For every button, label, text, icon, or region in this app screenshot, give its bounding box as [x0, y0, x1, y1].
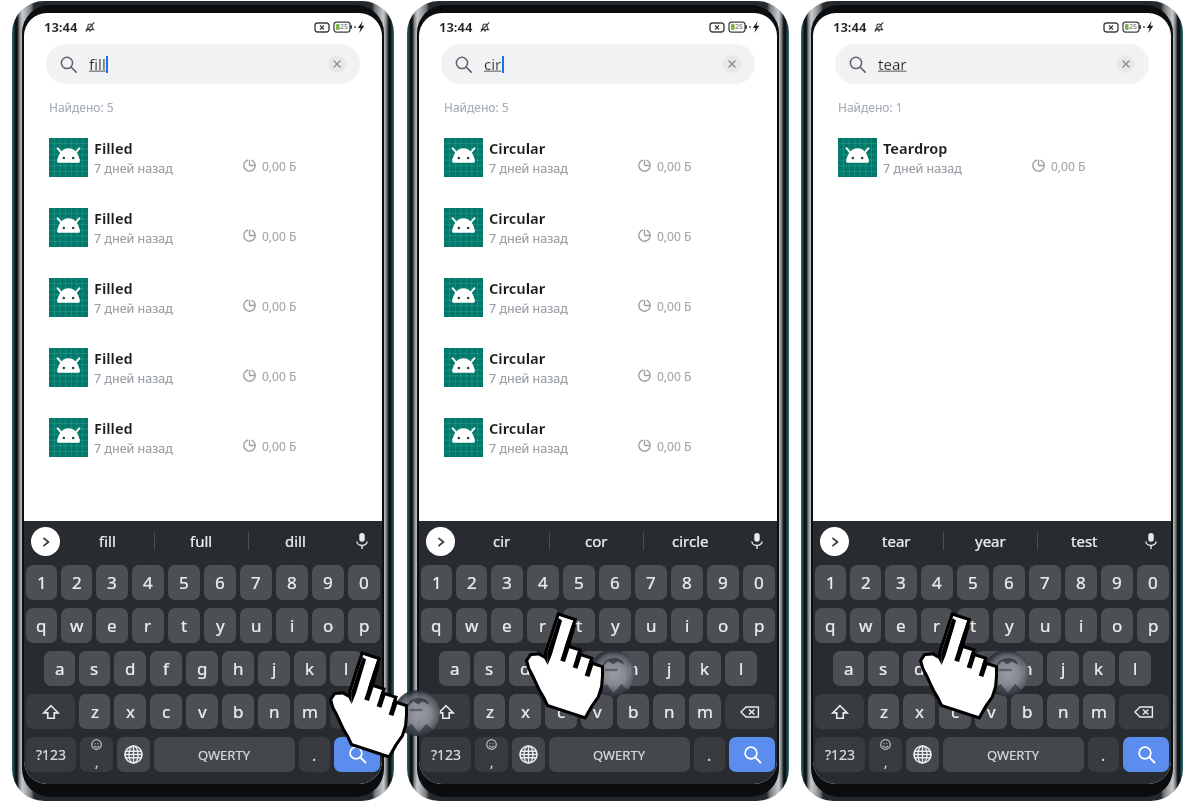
button[interactable]: f: [939, 651, 971, 686]
button[interactable]: 4: [527, 565, 559, 600]
button[interactable]: More suggestions: [820, 527, 849, 556]
button[interactable]: m: [689, 694, 721, 729]
button[interactable]: Shift: [815, 694, 864, 729]
button[interactable]: g: [186, 651, 218, 686]
button[interactable]: 2: [850, 565, 881, 600]
button[interactable]: cir: [441, 44, 755, 84]
button[interactable]: Change language: [906, 737, 939, 772]
button[interactable]: 5: [563, 565, 595, 600]
button[interactable]: s: [474, 651, 505, 686]
button[interactable]: 0: [1137, 565, 1169, 600]
button[interactable]: j: [1047, 651, 1079, 686]
button[interactable]: x: [509, 694, 541, 729]
button[interactable]: 7: [635, 565, 667, 600]
button[interactable]: Voice input: [1131, 521, 1171, 561]
button[interactable]: More suggestions: [426, 527, 455, 556]
button[interactable]: t: [563, 608, 595, 643]
button[interactable]: i: [276, 608, 308, 643]
button[interactable]: r: [921, 608, 953, 643]
button[interactable]: 9: [312, 565, 344, 600]
button[interactable]: f: [150, 651, 182, 686]
button[interactable]: QWERTY: [154, 737, 295, 772]
button[interactable]: l: [1119, 651, 1151, 686]
button[interactable]: 3: [885, 565, 917, 600]
button[interactable]: j: [258, 651, 290, 686]
button[interactable]: h: [222, 651, 254, 686]
button[interactable]: Emoji and comma: [475, 737, 508, 772]
button[interactable]: x: [903, 694, 935, 729]
button[interactable]: 8: [671, 565, 703, 600]
button[interactable]: cir: [455, 521, 549, 561]
button[interactable]: 6: [599, 565, 631, 600]
button[interactable]: i: [1065, 608, 1097, 643]
button[interactable]: z: [868, 694, 899, 729]
button[interactable]: Circular: [419, 332, 777, 402]
button[interactable]: h: [617, 651, 649, 686]
button[interactable]: a: [439, 651, 470, 686]
button[interactable]: 3: [491, 565, 523, 600]
button[interactable]: a: [44, 651, 75, 686]
button[interactable]: s: [79, 651, 110, 686]
button[interactable]: Clear search: [328, 55, 346, 73]
button[interactable]: r: [132, 608, 164, 643]
button[interactable]: 2: [456, 565, 487, 600]
button[interactable]: Circular: [419, 402, 777, 472]
button[interactable]: h: [1011, 651, 1043, 686]
button[interactable]: d: [903, 651, 935, 686]
button[interactable]: y: [204, 608, 236, 643]
button[interactable]: tear: [835, 44, 1149, 84]
button[interactable]: 5: [168, 565, 200, 600]
button[interactable]: Filled: [24, 402, 382, 472]
button[interactable]: 6: [993, 565, 1025, 600]
button[interactable]: b: [617, 694, 649, 729]
button[interactable]: o: [707, 608, 739, 643]
button[interactable]: p: [743, 608, 775, 643]
button[interactable]: Circular: [419, 192, 777, 262]
button[interactable]: 7: [1029, 565, 1061, 600]
button[interactable]: Filled: [24, 332, 382, 402]
button[interactable]: n: [653, 694, 685, 729]
button[interactable]: .: [694, 737, 725, 772]
button[interactable]: v: [186, 694, 218, 729]
button[interactable]: c: [939, 694, 971, 729]
button[interactable]: Clear search: [723, 55, 741, 73]
button[interactable]: .: [299, 737, 330, 772]
button[interactable]: dill: [249, 521, 342, 561]
button[interactable]: y: [599, 608, 631, 643]
button[interactable]: 0: [348, 565, 380, 600]
button[interactable]: 9: [707, 565, 739, 600]
button[interactable]: Search: [1123, 737, 1169, 772]
button[interactable]: year: [944, 521, 1037, 561]
button[interactable]: Shift: [421, 694, 470, 729]
button[interactable]: 7: [240, 565, 272, 600]
button[interactable]: 1: [421, 565, 452, 600]
button[interactable]: Shift: [26, 694, 75, 729]
button[interactable]: s: [868, 651, 899, 686]
button[interactable]: full: [155, 521, 248, 561]
button[interactable]: fill: [60, 521, 154, 561]
button[interactable]: n: [258, 694, 290, 729]
button[interactable]: 0: [743, 565, 775, 600]
button[interactable]: i: [671, 608, 703, 643]
button[interactable]: Emoji and comma: [869, 737, 902, 772]
button[interactable]: k: [689, 651, 721, 686]
button[interactable]: g: [581, 651, 613, 686]
button[interactable]: 4: [921, 565, 953, 600]
button[interactable]: k: [294, 651, 326, 686]
button[interactable]: q: [26, 608, 57, 643]
button[interactable]: l: [725, 651, 757, 686]
button[interactable]: w: [61, 608, 92, 643]
button[interactable]: e: [885, 608, 917, 643]
button[interactable]: test: [1038, 521, 1131, 561]
button[interactable]: o: [1101, 608, 1133, 643]
button[interactable]: Filled: [24, 262, 382, 332]
button[interactable]: l: [330, 651, 362, 686]
button[interactable]: p: [1137, 608, 1169, 643]
button[interactable]: u: [635, 608, 667, 643]
button[interactable]: circle: [644, 521, 737, 561]
button[interactable]: k: [1083, 651, 1115, 686]
button[interactable]: Backspace: [1119, 694, 1169, 729]
button[interactable]: z: [474, 694, 505, 729]
button[interactable]: Search: [334, 737, 380, 772]
button[interactable]: Backspace: [725, 694, 775, 729]
